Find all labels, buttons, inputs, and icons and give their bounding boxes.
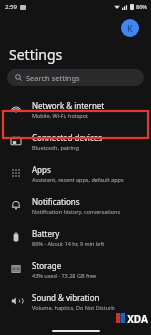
staticText: Mobile, Wi-Fi, hotspot <box>32 112 89 119</box>
button[interactable]: Storage <box>0 253 151 285</box>
staticText: Bluetooth, pairing <box>32 144 79 151</box>
button[interactable]: Search settings <box>7 69 144 86</box>
staticText: Network & internet <box>32 100 105 111</box>
staticText: Notification history, conversations <box>32 208 121 215</box>
staticText: Volume, haptics, Do Not Disturb <box>32 304 115 311</box>
staticText: Apps <box>32 164 51 175</box>
staticText: Notifications <box>32 196 80 207</box>
staticText: Connected devices <box>32 132 103 143</box>
staticText: 86% - About 14 hr, 9 min left <box>32 240 105 247</box>
staticText: Storage <box>32 260 62 271</box>
staticText: Search settings <box>26 73 80 83</box>
button[interactable]: Connected devices <box>0 125 151 157</box>
staticText: Sound & vibration <box>32 292 100 303</box>
staticText: 2:59 <box>5 3 17 11</box>
button[interactable]: Apps <box>0 157 151 189</box>
staticText: Battery <box>32 228 60 239</box>
staticText: K <box>127 22 133 34</box>
button[interactable]: Sound & vibration <box>0 285 151 317</box>
button[interactable]: Account <box>121 19 139 37</box>
staticText: XDA <box>127 312 148 324</box>
staticText: Assistant, recent apps, default apps <box>32 176 124 183</box>
button[interactable]: Battery <box>0 221 151 253</box>
button[interactable]: Network & internet <box>0 93 151 125</box>
staticText: 86% <box>136 3 147 10</box>
button[interactable]: Notifications <box>0 189 151 221</box>
staticText: Settings <box>9 45 63 64</box>
staticText: 43% used - 73.28 GB free <box>32 272 97 279</box>
